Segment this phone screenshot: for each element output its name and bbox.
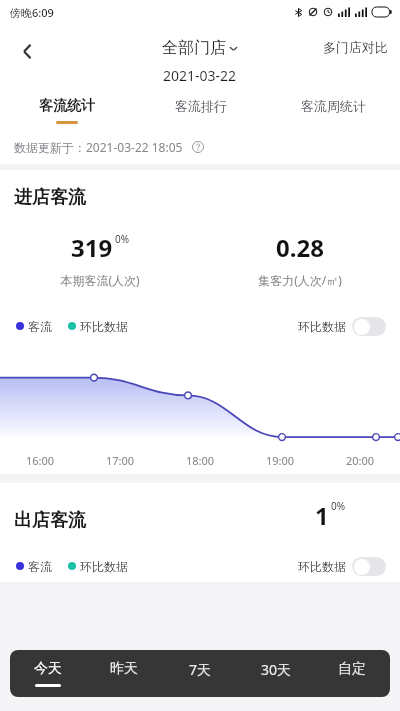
staticText: 0%: [331, 499, 346, 513]
staticText: 今天: [34, 660, 62, 678]
button[interactable]: Info: [189, 138, 207, 156]
staticText: 17:00: [106, 453, 135, 468]
staticText: 多门店对比: [323, 39, 388, 55]
staticText: 18:00: [186, 453, 215, 468]
staticText: 319: [71, 231, 113, 264]
staticText: 昨天: [110, 660, 138, 678]
staticText: 0%: [115, 232, 130, 246]
staticText: 环比数据: [298, 319, 346, 334]
button[interactable]: 客流统计: [0, 90, 134, 130]
staticText: 数据更新于：2021-03-22 18:05: [14, 139, 183, 155]
staticText: 19:00: [266, 453, 295, 468]
button[interactable]: 客流排行: [134, 90, 267, 130]
staticText: 进店客流: [14, 186, 86, 209]
staticText: 傍晚6:09: [10, 5, 54, 20]
button[interactable]: 30天: [238, 650, 314, 697]
button[interactable]: 昨天: [86, 650, 162, 697]
button[interactable]: 7天: [162, 650, 238, 697]
staticText: 客流统计: [39, 97, 95, 115]
staticText: 自定: [338, 660, 366, 678]
staticText: 1: [315, 499, 329, 532]
button[interactable]: 客流周统计: [267, 90, 400, 130]
button[interactable]: 今天: [10, 650, 86, 697]
staticText: 本期客流(人次): [60, 272, 140, 288]
button[interactable]: 自定: [314, 650, 390, 697]
staticText: 2021-03-22: [163, 66, 237, 85]
staticText: 客流: [28, 319, 52, 334]
staticText: 客流: [28, 559, 52, 574]
staticText: 环比数据: [80, 319, 128, 334]
button[interactable]: 环比数据: [298, 557, 386, 576]
staticText: 环比数据: [80, 559, 128, 574]
staticText: 环比数据: [298, 559, 346, 574]
button[interactable]: Back: [6, 30, 48, 72]
staticText: 7天: [189, 660, 212, 679]
button[interactable]: 多门店对比: [321, 35, 390, 59]
staticText: 全部门店: [162, 38, 226, 58]
staticText: 16:00: [26, 453, 55, 468]
staticText: 集客力(人次/㎡): [258, 272, 342, 288]
button[interactable]: 全部门店: [162, 38, 238, 58]
staticText: 20:00: [346, 453, 375, 468]
button[interactable]: 环比数据: [298, 317, 386, 336]
staticText: 客流周统计: [301, 98, 366, 114]
staticText: 30天: [261, 660, 292, 679]
staticText: 客流排行: [175, 98, 227, 114]
staticText: 出店客流: [14, 509, 86, 532]
staticText: 0.28: [276, 231, 324, 264]
